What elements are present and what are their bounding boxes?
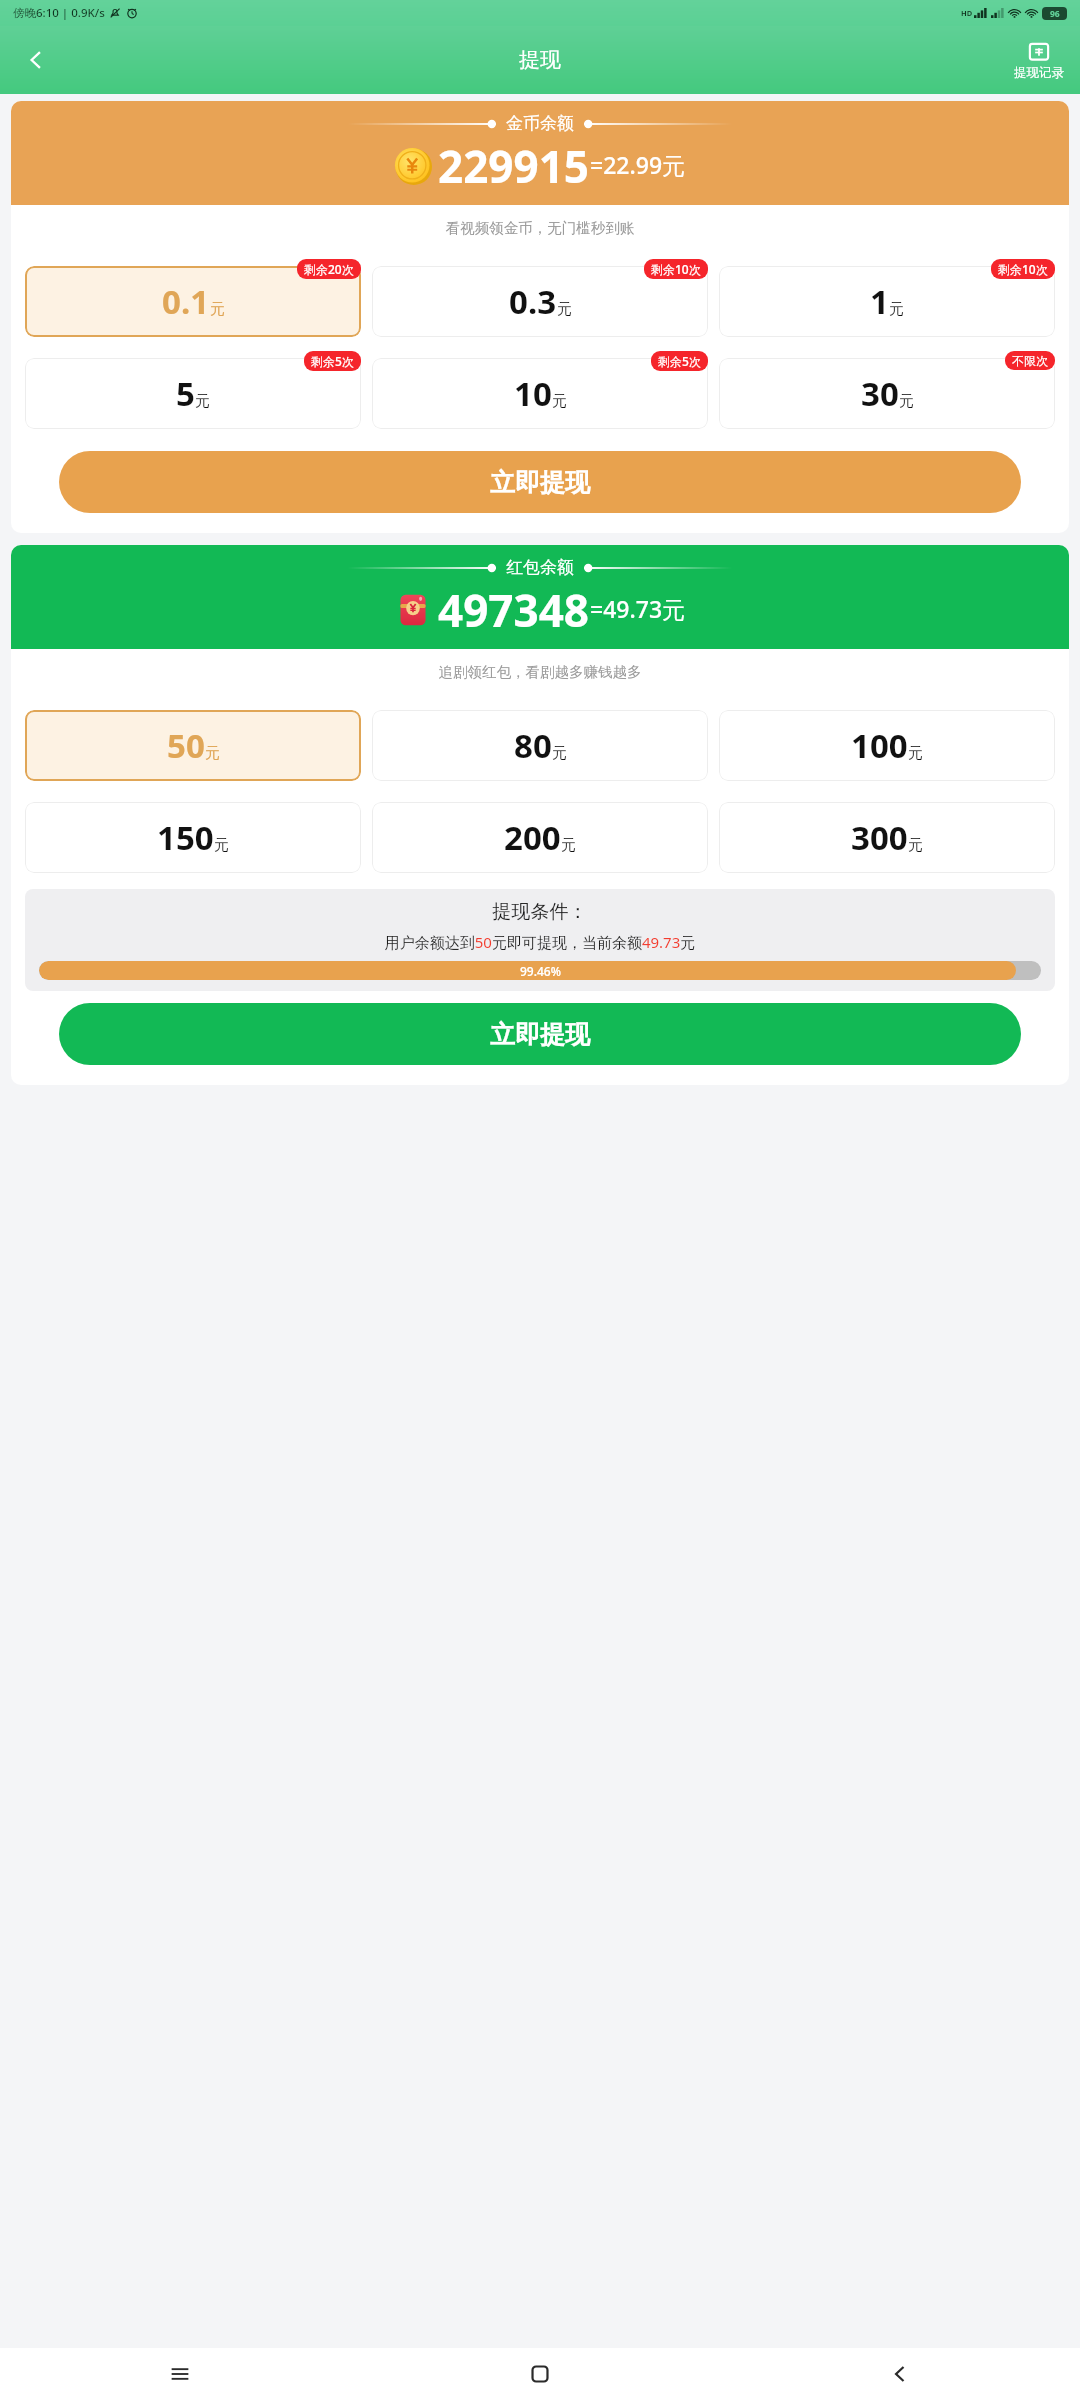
button[interactable]: 1 (719, 266, 1055, 337)
staticText: 30 (861, 371, 899, 416)
staticText: 96 (1050, 8, 1060, 20)
staticText: 50 (167, 723, 205, 768)
staticText: 497348 (438, 580, 590, 640)
button[interactable]: 30 (719, 358, 1055, 429)
staticText: 元 (908, 836, 923, 855)
button[interactable]: Recents (0, 2348, 360, 2400)
staticText: 10 (514, 371, 552, 416)
button[interactable]: 0.3 (372, 266, 708, 337)
button[interactable]: Back (14, 38, 58, 82)
button[interactable]: 300 (719, 802, 1055, 873)
button[interactable]: 立即提现 (59, 1003, 1021, 1065)
button[interactable]: 5 (25, 358, 361, 429)
button[interactable]: 150 (25, 802, 361, 873)
staticText: 元 (561, 836, 576, 855)
staticText: 提现 (519, 47, 561, 73)
staticText: 0.1 (162, 279, 210, 324)
button[interactable]: 0.1 (25, 266, 361, 337)
staticText: 1 (870, 279, 889, 324)
staticText: =22.99元 (590, 149, 686, 180)
staticText: 剩余10次 (651, 261, 701, 277)
staticText: 元 (205, 744, 220, 763)
button[interactable]: Home (360, 2348, 720, 2400)
button[interactable]: 10 (372, 358, 708, 429)
staticText: 200 (504, 815, 561, 860)
staticText: 剩余5次 (311, 353, 354, 369)
staticText: 金币余额 (506, 113, 574, 134)
staticText: =49.73元 (590, 593, 686, 624)
staticText: 0.3 (509, 279, 557, 324)
staticText: 用户余额达到50元即可提现，当前余额49.73元 (39, 932, 1041, 952)
staticText: 提现记录 (1014, 65, 1064, 81)
staticText: 229915 (438, 136, 590, 196)
staticText: 元 (195, 392, 210, 411)
staticText: 不限次 (1012, 353, 1048, 368)
staticText: 立即提现 (490, 467, 590, 498)
staticText: 300 (851, 815, 908, 860)
staticText: 80 (514, 723, 552, 768)
staticText: 元 (889, 300, 904, 319)
staticText: 立即提现 (490, 1019, 590, 1050)
button[interactable]: 80 (372, 710, 708, 781)
staticText: 看视频领金币，无门槛秒到账 (11, 219, 1069, 237)
staticText: 元 (908, 744, 923, 763)
staticText: HD (961, 8, 973, 18)
button[interactable]: Back (720, 2348, 1080, 2400)
staticText: 元 (899, 392, 914, 411)
staticText: 剩余20次 (304, 261, 354, 277)
staticText: 5 (176, 371, 195, 416)
staticText: 100 (851, 723, 908, 768)
staticText: 提现条件： (39, 900, 1041, 924)
button[interactable]: 立即提现 (59, 451, 1021, 513)
staticText: 红包余额 (506, 557, 574, 578)
button[interactable]: 100 (719, 710, 1055, 781)
button[interactable]: 200 (372, 802, 708, 873)
button[interactable]: 提现记录 (1010, 40, 1068, 81)
staticText: 150 (157, 815, 214, 860)
staticText: 傍晚6:10 | 0.9K/s (13, 5, 105, 21)
staticText: 剩余10次 (998, 261, 1048, 277)
staticText: 元 (552, 744, 567, 763)
button[interactable]: 50 (25, 710, 361, 781)
staticText: 元 (210, 300, 225, 319)
staticText: 99.46% (520, 963, 561, 979)
staticText: 元 (214, 836, 229, 855)
staticText: 元 (552, 392, 567, 411)
staticText: 追剧领红包，看剧越多赚钱越多 (11, 663, 1069, 681)
staticText: 元 (557, 300, 572, 319)
staticText: 剩余5次 (658, 353, 701, 369)
